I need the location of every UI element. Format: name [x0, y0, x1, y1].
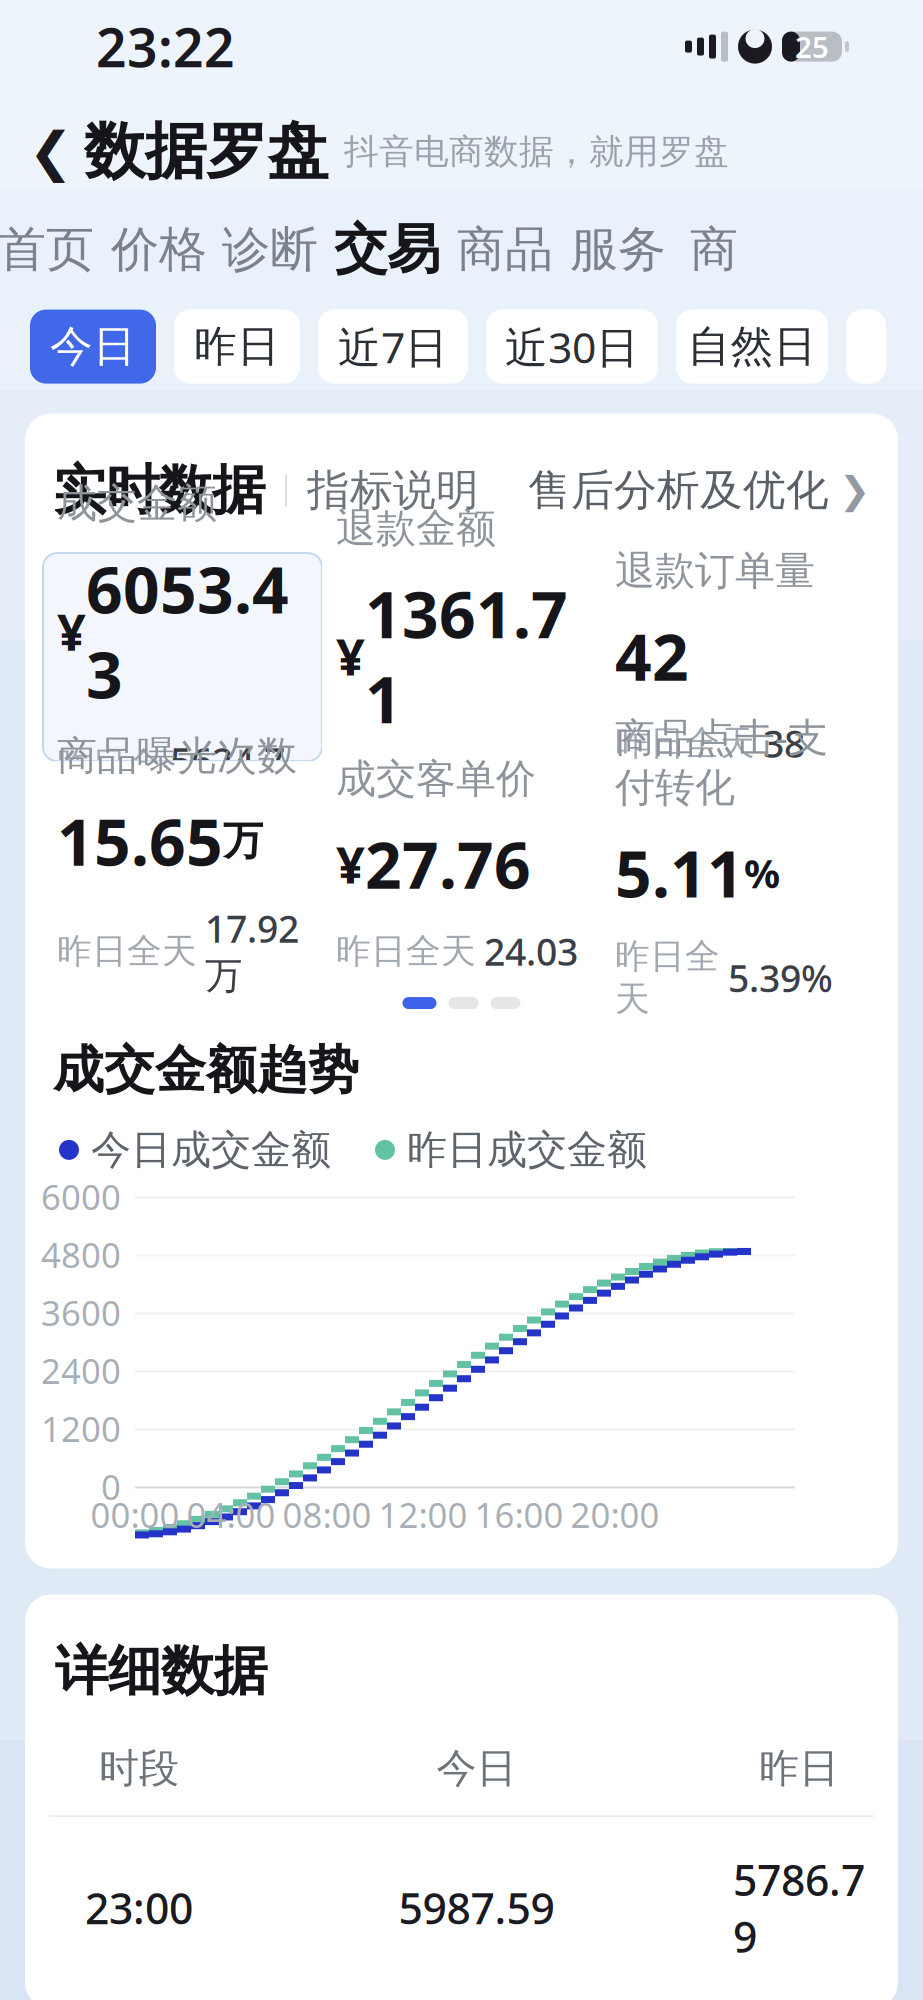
staticText: 4800 — [41, 1231, 121, 1277]
button[interactable]: 成交金额 — [43, 553, 322, 761]
staticText: 昨日全天 — [336, 930, 476, 972]
staticText: 1200 — [41, 1405, 121, 1451]
staticText: 今日 — [50, 320, 136, 373]
staticText: 25 — [795, 27, 829, 66]
staticText: 42 — [615, 613, 689, 698]
staticText: 昨日成交金额 — [407, 1125, 647, 1174]
button[interactable]: 服务 — [562, 202, 674, 298]
staticText: 5987.59 — [398, 1879, 554, 1936]
staticText: 昨日全天 — [615, 935, 720, 1020]
staticText: 成交金额 — [57, 479, 217, 528]
button[interactable]: 售后分析及优化 — [528, 464, 870, 516]
staticText: 售后分析及优化 — [528, 464, 829, 516]
staticText: 昨日全天 — [57, 930, 197, 972]
button[interactable]: 商品 — [448, 202, 562, 298]
staticText: 退款订单量 — [615, 546, 815, 595]
button[interactable]: 首页 — [0, 202, 104, 298]
staticText: 商品点击-支付转化 — [615, 710, 828, 812]
staticText: 今日 — [436, 1744, 516, 1793]
button[interactable]: 近30日 — [486, 310, 658, 384]
staticText: 昨日全天 — [336, 764, 476, 807]
staticText: 成交金额趋势 — [53, 1039, 359, 1101]
staticText: 12:00 — [378, 1491, 467, 1537]
staticText: 5624.78 — [170, 736, 285, 835]
button[interactable]: 诊断 — [214, 202, 326, 298]
staticText: 944.9 — [484, 761, 578, 810]
staticText: 商品 — [457, 220, 553, 279]
staticText: 23:00 — [85, 1879, 193, 1936]
staticText: 5786.79 — [733, 1851, 865, 1964]
staticText: 6053.43 — [86, 546, 289, 716]
staticText: 昨日 — [194, 320, 280, 373]
staticText: 5.39% — [728, 953, 833, 1002]
staticText: 指标说明 — [307, 464, 479, 516]
staticText: ❯ — [839, 469, 870, 512]
staticText: 04:00 — [186, 1491, 275, 1537]
button[interactable]: 指标说明 — [307, 464, 479, 516]
staticText: 23:22 — [96, 11, 235, 82]
staticText: 0 — [101, 1463, 121, 1509]
staticText: ¥ — [336, 830, 365, 897]
staticText: 服务 — [570, 220, 666, 279]
staticText: 退款金额 — [336, 504, 496, 553]
staticText: 08:00 — [282, 1491, 371, 1537]
staticText: ¥ — [57, 597, 86, 665]
button[interactable]: 今日 — [30, 310, 156, 384]
staticText: 成交客单价 — [336, 754, 536, 803]
button[interactable]: 昨日 — [174, 310, 300, 384]
button[interactable]: 商 — [674, 202, 754, 298]
staticText: 2400 — [41, 1347, 121, 1393]
staticText: 商品曝光次数 — [57, 731, 297, 780]
staticText: 诊断 — [222, 220, 318, 279]
staticText: 近30日 — [505, 318, 639, 375]
staticText: 近7日 — [338, 318, 448, 375]
button[interactable]: 商品点击-支付转化 — [601, 761, 880, 969]
button[interactable]: 返回 — [22, 116, 80, 188]
button[interactable]: 商品曝光次数 — [43, 761, 322, 969]
staticText: 昨日 — [759, 1744, 839, 1793]
staticText: 16:00 — [474, 1491, 563, 1537]
staticText: 自然日 — [687, 320, 816, 373]
staticText: 27.76 — [365, 821, 531, 906]
staticText: 抖音电商数据，就用罗盘 — [344, 130, 729, 173]
staticText: 万 — [223, 816, 263, 865]
button[interactable]: 价格 — [104, 202, 214, 298]
staticText: 17.92万 — [205, 903, 299, 999]
staticText: 实时数据 — [53, 458, 265, 523]
staticText: 时段 — [99, 1744, 179, 1793]
staticText: 昨日全天 — [615, 722, 755, 764]
staticText: 5.11 — [615, 830, 744, 915]
staticText: 15.65 — [57, 798, 223, 883]
staticText: 数据罗盘 — [84, 114, 328, 189]
staticText: 20:00 — [570, 1491, 659, 1537]
button[interactable]: 退款订单量 — [601, 553, 880, 761]
staticText: 00:00 — [90, 1491, 179, 1537]
staticText: ❮ — [28, 121, 73, 182]
button[interactable]: 自然日 — [676, 310, 828, 384]
button[interactable]: 交易 — [326, 202, 448, 298]
staticText: 38 — [763, 718, 805, 768]
staticText: 价格 — [111, 220, 207, 279]
staticText: 详细数据 — [55, 1638, 267, 1704]
staticText: ¥ — [336, 622, 365, 689]
staticText: 交易 — [334, 217, 440, 282]
staticText: 今日成交金额 — [91, 1125, 331, 1174]
button[interactable]: 近7日 — [318, 310, 468, 384]
staticText: 首页 — [0, 220, 94, 279]
staticText: 商 — [690, 220, 738, 279]
button[interactable]: 退款金额 — [322, 553, 601, 761]
staticText: 3600 — [41, 1289, 121, 1335]
staticText: % — [744, 846, 780, 899]
staticText: 1361.71 — [365, 571, 568, 741]
button[interactable]: 成交客单价 — [322, 761, 601, 969]
staticText: 昨日全天 — [57, 743, 162, 828]
staticText: 24.03 — [484, 926, 578, 976]
staticText: 6000 — [41, 1173, 121, 1219]
button[interactable] — [846, 310, 886, 384]
